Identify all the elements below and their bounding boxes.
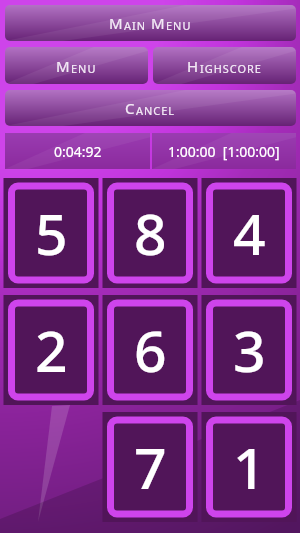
staticText: 1:00:00 [1:00:00] (168, 142, 280, 161)
staticText: 8 (134, 194, 167, 272)
staticText: IGHSCORE (200, 61, 262, 76)
button[interactable]: 2 (4, 295, 99, 405)
staticText: 4 (233, 194, 266, 272)
button[interactable]: 4 (202, 178, 297, 288)
button[interactable]: 3 (202, 295, 297, 405)
button[interactable]: 1 (202, 412, 297, 522)
staticText: 6 (134, 311, 167, 389)
button[interactable]: C (5, 90, 296, 126)
staticText: M (151, 13, 166, 33)
staticText: 5 (35, 194, 68, 272)
button[interactable]: 0:04:92 (5, 133, 150, 169)
staticText: ENU (71, 61, 97, 76)
staticText: AIN (124, 18, 147, 33)
staticText (147, 13, 151, 33)
staticText: 3 (233, 311, 266, 389)
staticText: C (125, 98, 136, 118)
staticText: M (109, 13, 124, 33)
staticText: ENU (166, 18, 192, 33)
button[interactable]: 1:00:00 [1:00:00] (152, 133, 296, 169)
button[interactable]: 6 (103, 295, 198, 405)
button[interactable]: M (5, 5, 296, 41)
button[interactable]: 5 (4, 178, 99, 288)
staticText: 1 (233, 428, 266, 506)
button[interactable]: 7 (103, 412, 198, 522)
button[interactable]: 8 (103, 178, 198, 288)
staticText: ANCEL (136, 103, 176, 118)
staticText: H (187, 56, 200, 76)
staticText: 7 (134, 428, 167, 506)
staticText: 2 (35, 311, 68, 389)
staticText: M (56, 56, 71, 76)
button[interactable]: M (5, 47, 148, 84)
button[interactable]: H (153, 47, 296, 84)
staticText: 0:04:92 (54, 142, 102, 161)
